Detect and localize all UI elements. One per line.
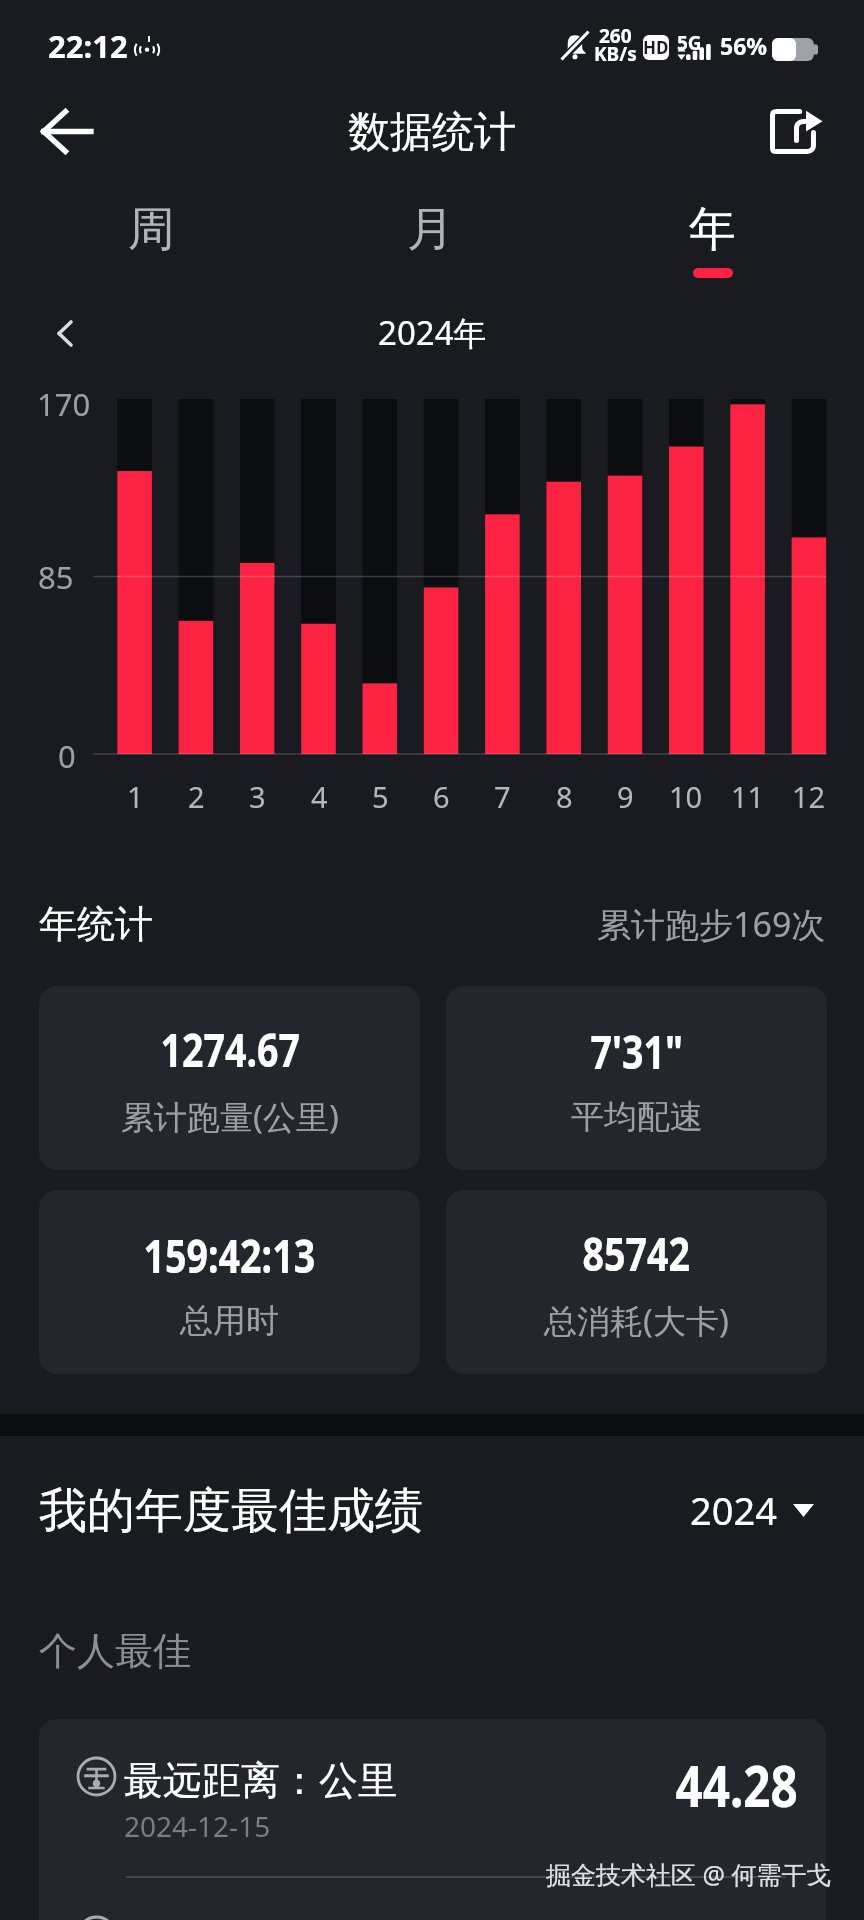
staticText: 260 xyxy=(599,23,632,49)
staticText: KB/s xyxy=(594,41,637,67)
staticText: 159:42:13 xyxy=(143,1223,315,1287)
staticText: 4 xyxy=(311,777,328,816)
button[interactable]: Previous year xyxy=(30,298,100,368)
staticText: 年统计 xyxy=(39,900,153,948)
staticText: 年 xyxy=(689,200,736,259)
staticText: 2024 xyxy=(690,1484,777,1536)
staticText: 1274.67 xyxy=(160,1017,300,1081)
staticText: 累计跑步169次 xyxy=(597,901,826,947)
button[interactable]: 1274.67 xyxy=(39,986,420,1170)
staticText: 85 xyxy=(38,556,74,598)
button[interactable]: 7'31" xyxy=(446,986,827,1170)
button[interactable]: 85742 xyxy=(446,1190,827,1374)
staticText: 85742 xyxy=(582,1221,690,1285)
staticText: 2 xyxy=(188,777,205,816)
staticText: 7 xyxy=(494,777,511,816)
button[interactable]: 月 xyxy=(335,176,525,291)
staticText: 170 xyxy=(37,383,91,425)
staticText: 周 xyxy=(128,200,175,259)
staticText: 11 xyxy=(731,777,765,816)
button[interactable]: 最远距离：公里 xyxy=(39,1719,826,1876)
staticText: 总消耗(大卡) xyxy=(544,1298,729,1343)
staticText: 56% xyxy=(720,30,768,61)
button[interactable]: 2024 xyxy=(690,1482,814,1538)
staticText: 5G xyxy=(677,30,702,56)
staticText: 总用时 xyxy=(180,1300,279,1342)
staticText: 7'31" xyxy=(591,1019,683,1083)
staticText: 平均配速 xyxy=(571,1096,703,1138)
button[interactable]: 最长时间 xyxy=(39,1878,826,1920)
staticText: HD xyxy=(643,36,669,59)
staticText: 1 xyxy=(127,777,144,816)
staticText: 8 xyxy=(556,777,573,816)
staticText: 0 xyxy=(58,735,76,777)
button[interactable]: 周 xyxy=(56,176,246,291)
staticText: 掘金技术社区 @ 何需干戈 xyxy=(546,1857,832,1891)
staticText: 22:12 xyxy=(48,25,128,67)
staticText: 3 xyxy=(249,777,266,816)
staticText: 12 xyxy=(792,777,826,816)
staticText: 月 xyxy=(407,200,454,259)
staticText: 5 xyxy=(372,777,389,816)
staticText: 最远距离：公里 xyxy=(124,1756,397,1805)
staticText: 2024-12-15 xyxy=(124,1807,271,1845)
staticText: 9 xyxy=(617,777,634,816)
button[interactable]: 159:42:13 xyxy=(39,1190,420,1374)
button[interactable]: Share xyxy=(746,86,846,176)
staticText: 数据统计 xyxy=(348,106,516,159)
staticText: 2024年 xyxy=(378,310,487,355)
staticText: 个人最佳 xyxy=(39,1627,191,1675)
button[interactable]: 年 xyxy=(617,176,807,291)
staticText: 44.28 xyxy=(675,1745,798,1824)
button[interactable]: Back xyxy=(25,90,107,172)
staticText: 我的年度最佳成绩 xyxy=(39,1481,423,1541)
staticText: 10 xyxy=(669,777,703,816)
staticText: 6 xyxy=(433,777,450,816)
staticText: 累计跑量(公里) xyxy=(121,1094,339,1139)
